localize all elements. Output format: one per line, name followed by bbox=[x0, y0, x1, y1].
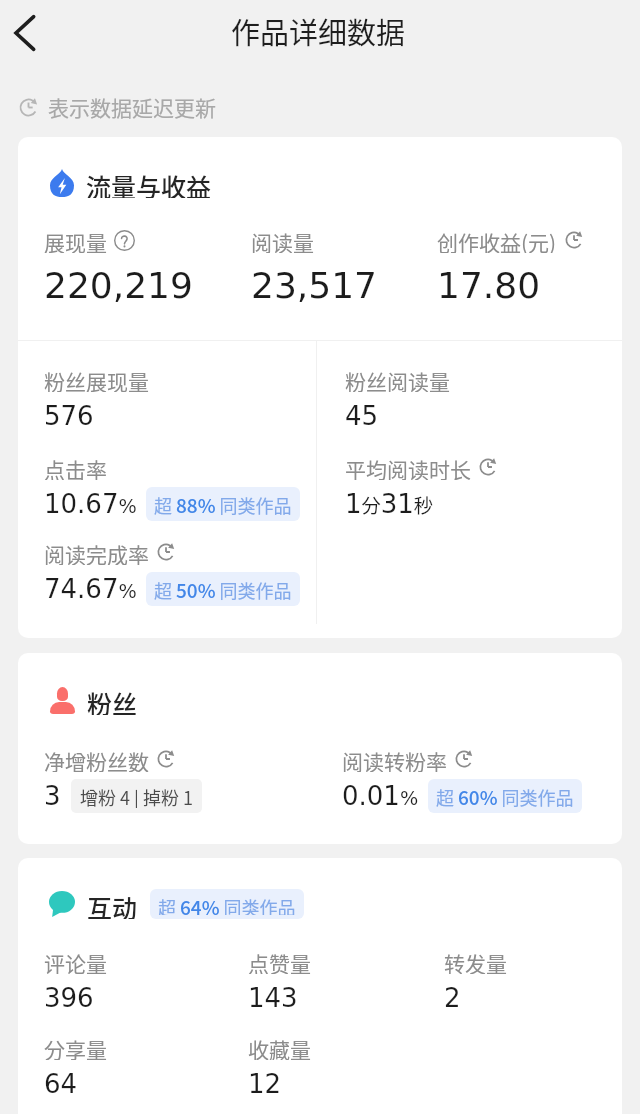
staticText: 45 bbox=[345, 401, 379, 431]
staticText: 平均阅读时长 bbox=[345, 454, 471, 480]
staticText: 评论量 bbox=[44, 948, 107, 974]
staticText: 创作收益(元) bbox=[437, 227, 557, 253]
staticText: 超 64% 同类作品 bbox=[158, 893, 296, 915]
staticText: 1分31秒 bbox=[345, 489, 434, 519]
staticText: 74.67% bbox=[44, 574, 137, 604]
staticText: 点赞量 bbox=[248, 948, 311, 974]
staticText: 3 bbox=[44, 781, 61, 811]
staticText: 作品详细数据 bbox=[231, 10, 406, 52]
staticText: 23,517 bbox=[251, 265, 377, 307]
staticText: 收藏量 bbox=[248, 1034, 311, 1060]
staticText: 17.80 bbox=[437, 265, 541, 307]
staticText: 阅读量 bbox=[251, 227, 314, 253]
staticText: 粉丝阅读量 bbox=[345, 366, 450, 392]
staticText: 10.67% bbox=[44, 489, 137, 519]
staticText: 220,219 bbox=[44, 265, 193, 307]
staticText: 2 bbox=[444, 983, 461, 1013]
staticText: 阅读完成率 bbox=[44, 539, 149, 565]
staticText: 12 bbox=[248, 1069, 282, 1099]
staticText: 流量与收益 bbox=[86, 168, 212, 198]
staticText: 64 bbox=[44, 1069, 78, 1099]
staticText: 396 bbox=[44, 983, 94, 1013]
staticText: 转发量 bbox=[444, 948, 507, 974]
staticText: 表示数据延迟更新 bbox=[48, 92, 216, 122]
staticText: 超 88% 同类作品 bbox=[154, 491, 292, 517]
staticText: 超 60% 同类作品 bbox=[436, 783, 574, 809]
staticText: 0.01% bbox=[342, 781, 419, 811]
staticText: 阅读转粉率 bbox=[342, 746, 447, 772]
staticText: 增粉 4 | 掉粉 1 bbox=[80, 784, 193, 808]
staticText: 粉丝 bbox=[87, 685, 138, 715]
staticText: 576 bbox=[44, 401, 94, 431]
staticText: 超 50% 同类作品 bbox=[154, 576, 292, 602]
staticText: 净增粉丝数 bbox=[44, 746, 149, 772]
staticText: 互动 bbox=[87, 889, 138, 919]
staticText: 分享量 bbox=[44, 1034, 107, 1060]
staticText: 展现量 bbox=[44, 227, 107, 253]
button[interactable]: Back bbox=[0, 9, 48, 57]
staticText: 点击率 bbox=[44, 454, 107, 480]
staticText: 143 bbox=[248, 983, 298, 1013]
staticText: 粉丝展现量 bbox=[44, 366, 149, 392]
